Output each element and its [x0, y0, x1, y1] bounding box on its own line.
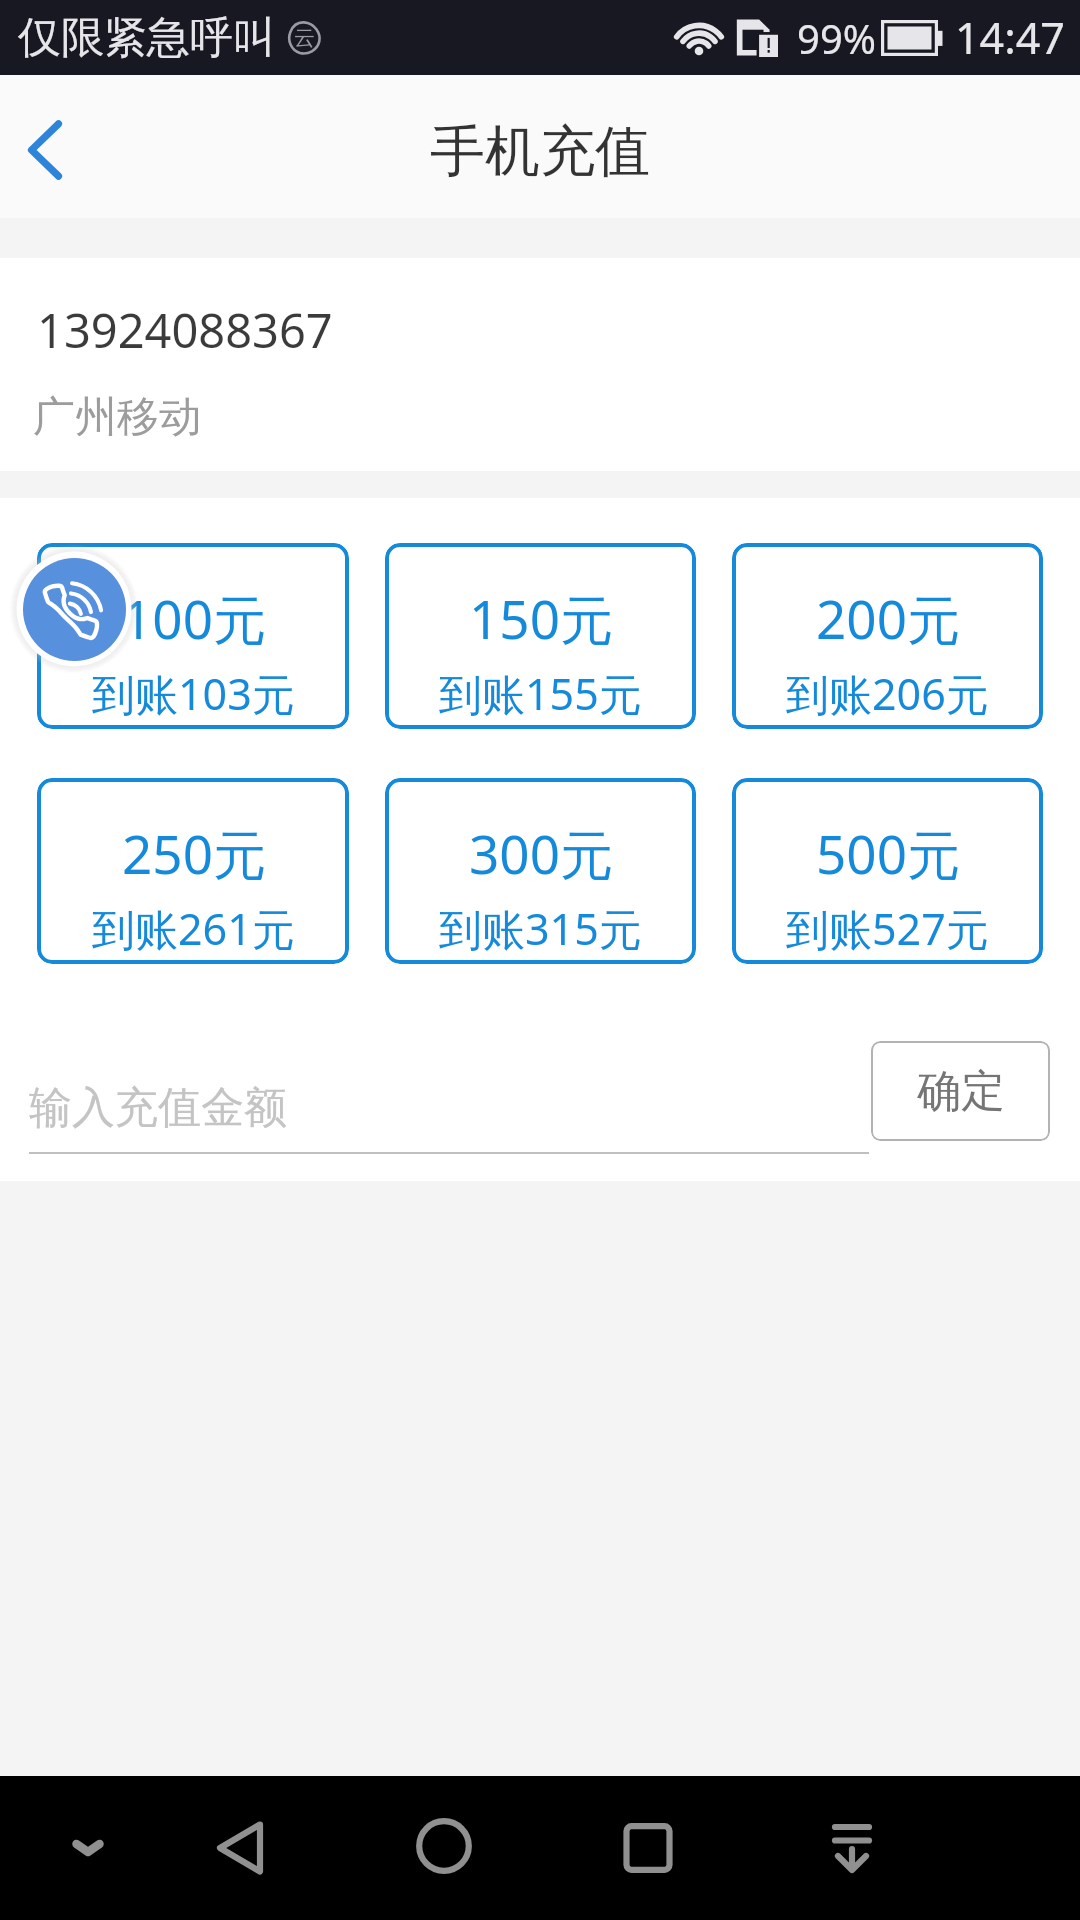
button[interactable]: 300元 — [385, 778, 696, 964]
button[interactable]: 返回 — [0, 95, 110, 205]
button[interactable]: 拨打电话 — [23, 558, 126, 661]
button[interactable]: Notifications — [802, 1798, 902, 1898]
staticText: 到账315元 — [439, 899, 642, 958]
staticText: 150元 — [469, 582, 613, 654]
staticText: 200元 — [816, 582, 960, 654]
staticText: 广州移动 — [33, 391, 201, 444]
staticText: 到账206元 — [786, 664, 989, 723]
button[interactable]: Collapse keyboard — [38, 1798, 138, 1898]
button[interactable]: 500元 — [732, 778, 1043, 964]
staticText: 到账155元 — [439, 664, 642, 723]
staticText: 14:47 — [955, 8, 1065, 67]
staticText: 到账103元 — [92, 664, 295, 723]
staticText: 手机充值 — [430, 117, 650, 186]
staticText: 99% — [797, 11, 876, 65]
button[interactable]: 100元 — [37, 543, 349, 729]
staticText: 13924088367 — [37, 298, 333, 362]
staticText: 500元 — [816, 817, 960, 889]
staticText: 云 — [294, 25, 315, 51]
staticText: 输入充值金额 — [29, 1081, 287, 1135]
button[interactable]: Recent apps — [598, 1798, 698, 1898]
staticText: 到账261元 — [92, 899, 295, 958]
button[interactable]: 250元 — [37, 778, 349, 964]
staticText: 300元 — [469, 817, 613, 889]
staticText: 到账527元 — [786, 899, 989, 958]
staticText: 仅限紧急呼叫 — [18, 11, 276, 65]
button[interactable]: 确定 — [871, 1041, 1050, 1141]
button[interactable]: 200元 — [732, 543, 1043, 729]
button[interactable]: Back — [190, 1798, 290, 1898]
staticText: 100元 — [122, 582, 266, 654]
button[interactable]: Home — [394, 1796, 494, 1896]
button[interactable]: 150元 — [385, 543, 696, 729]
staticText: 250元 — [122, 817, 266, 889]
staticText: 确定 — [917, 1064, 1005, 1119]
